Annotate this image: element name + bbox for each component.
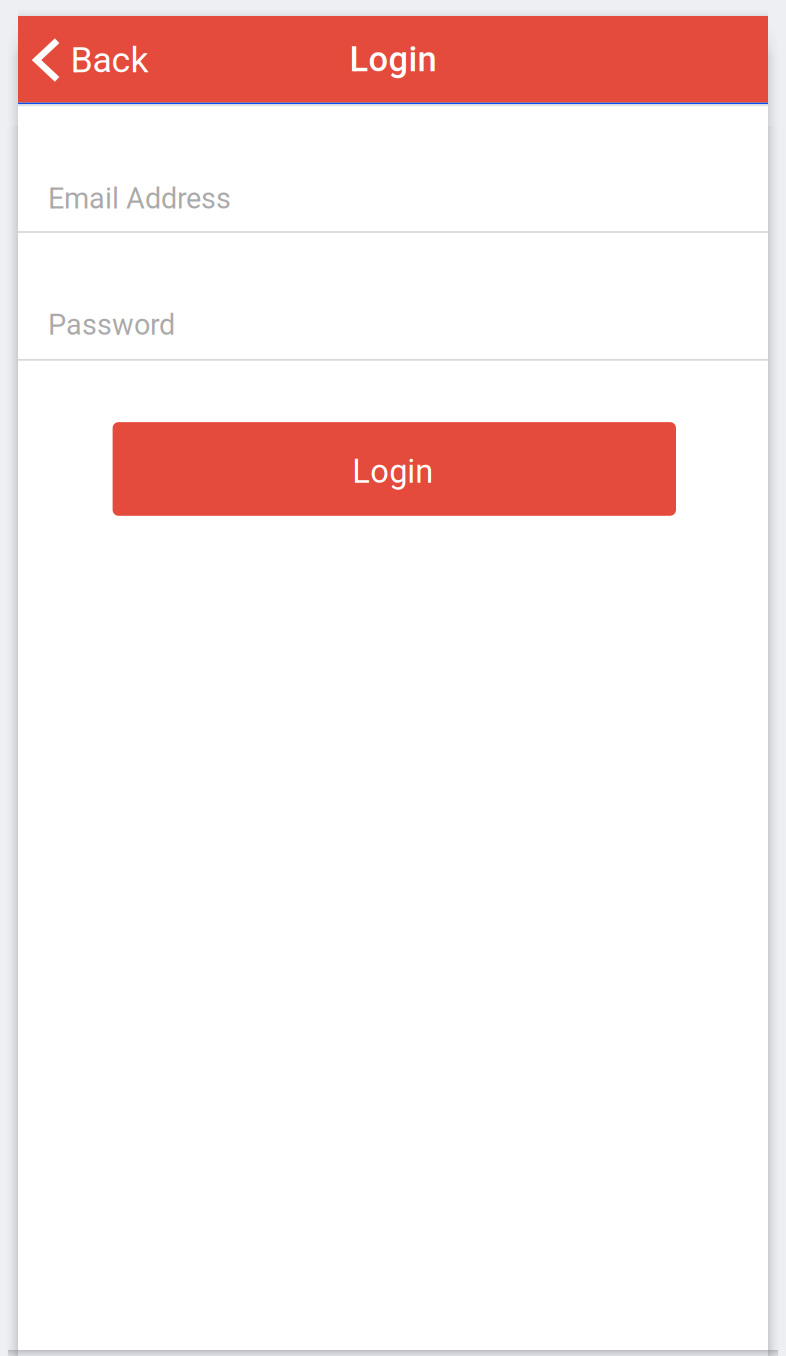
- button[interactable]: Email Address: [18, 106, 768, 233]
- staticText: Login: [349, 39, 436, 80]
- button[interactable]: Password: [18, 233, 768, 361]
- staticText: Email Address: [48, 182, 231, 215]
- button[interactable]: Login: [113, 422, 676, 516]
- staticText: Login: [352, 453, 433, 491]
- staticText: Password: [48, 308, 175, 342]
- staticText: Back: [70, 39, 148, 81]
- button[interactable]: Back: [18, 16, 162, 103]
